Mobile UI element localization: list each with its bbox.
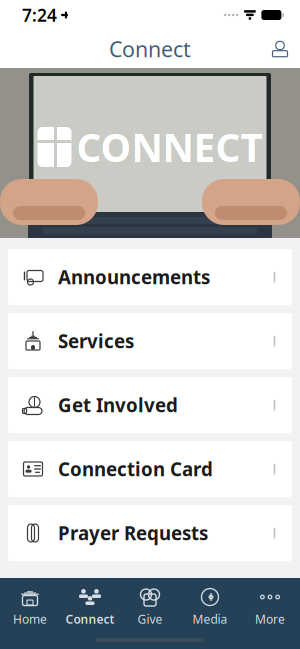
staticText: Services: [58, 329, 134, 353]
button[interactable]: Media: [180, 587, 240, 627]
button[interactable]: Give: [120, 587, 180, 627]
button[interactable]: Profile: [260, 30, 300, 68]
staticText: Connect: [65, 611, 114, 627]
staticText: Prayer Requests: [58, 521, 208, 545]
staticText: More: [255, 611, 285, 627]
staticText: 7:24: [22, 3, 57, 26]
staticText: Give: [137, 611, 162, 627]
button[interactable]: Announcements: [8, 249, 292, 305]
staticText: Home: [13, 611, 47, 627]
button[interactable]: Get Involved: [8, 377, 292, 433]
button[interactable]: More: [240, 587, 300, 627]
button[interactable]: Services: [8, 313, 292, 369]
staticText: Connection Card: [58, 457, 213, 481]
button[interactable]: Connection Card: [8, 441, 292, 497]
staticText: Media: [192, 611, 227, 627]
button[interactable]: Connect: [60, 587, 120, 627]
staticText: Announcements: [58, 265, 210, 289]
button[interactable]: Prayer Requests: [8, 505, 292, 561]
staticText: Connect: [109, 35, 191, 63]
staticText: Get Involved: [58, 393, 178, 417]
button[interactable]: Home: [0, 587, 60, 627]
staticText: CONNECT: [76, 121, 262, 173]
